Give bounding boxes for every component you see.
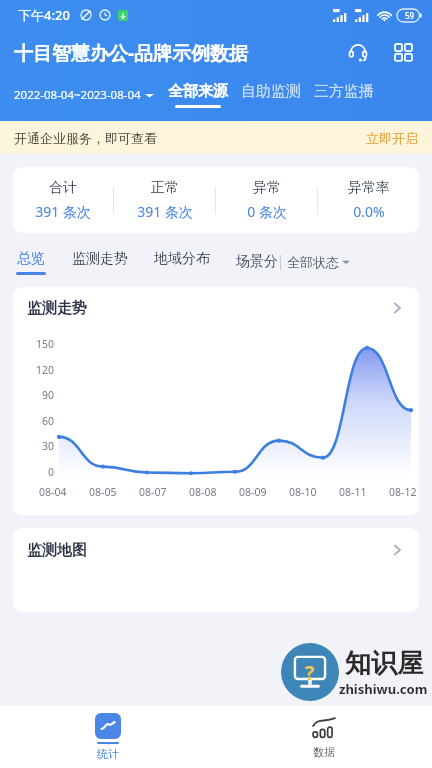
button[interactable]: 监测地图 bbox=[13, 528, 419, 572]
staticText: 08-09 bbox=[239, 485, 267, 499]
staticText: 总览 bbox=[17, 250, 45, 268]
button[interactable]: 合计 bbox=[13, 179, 113, 221]
staticText: 十目智慧办公-品牌示例数据 bbox=[14, 40, 249, 66]
staticText: 90 bbox=[42, 388, 55, 402]
staticText: 08-08 bbox=[189, 485, 217, 499]
staticText: 合计 bbox=[49, 179, 77, 197]
staticText: 监测走势 bbox=[72, 250, 128, 268]
staticText: 数据 bbox=[313, 745, 335, 759]
staticText: 08-10 bbox=[289, 485, 317, 499]
staticText: 立即开启 bbox=[366, 130, 418, 146]
button[interactable]: 统计 bbox=[0, 706, 216, 768]
button[interactable]: 监测走势 bbox=[13, 287, 419, 329]
staticText: 下午4:20 bbox=[18, 6, 70, 24]
button[interactable]: 总览 bbox=[16, 250, 46, 275]
button[interactable]: 异常 bbox=[216, 179, 317, 221]
staticText: 全部状态 bbox=[287, 254, 339, 270]
staticText: 异常率 bbox=[348, 179, 390, 197]
staticText: 391 条次 bbox=[137, 202, 193, 221]
staticText: 08-11 bbox=[339, 485, 367, 499]
button[interactable]: 全部状态 bbox=[287, 254, 350, 270]
staticText: 异常 bbox=[253, 179, 281, 197]
staticText: 120 bbox=[36, 363, 55, 377]
staticText: 150 bbox=[36, 337, 55, 351]
staticText: 0 条次 bbox=[247, 202, 287, 221]
button[interactable]: 正常 bbox=[114, 179, 215, 221]
button[interactable]: 异常率 bbox=[318, 179, 419, 221]
staticText: 30 bbox=[42, 439, 55, 453]
staticText: 监测走势 bbox=[27, 299, 87, 318]
staticText: 三方监播 bbox=[314, 82, 374, 101]
staticText: 08-12 bbox=[389, 485, 417, 499]
button[interactable]: 监测走势 bbox=[72, 250, 128, 275]
button[interactable]: 自助监测 bbox=[241, 82, 301, 108]
button[interactable]: 地域分布 bbox=[154, 250, 210, 275]
staticText: 0.0% bbox=[353, 202, 385, 221]
staticText: 地域分布 bbox=[154, 250, 210, 268]
staticText: 正常 bbox=[151, 179, 179, 197]
staticText: 知识屋 bbox=[345, 647, 423, 680]
staticText: 0 bbox=[48, 465, 55, 479]
button[interactable]: 全部来源 bbox=[168, 82, 228, 108]
button[interactable]: 2022-08-04~2023-08-04 bbox=[14, 87, 154, 103]
button[interactable]: 三方监播 bbox=[314, 82, 374, 108]
staticText: 统计 bbox=[97, 747, 119, 761]
staticText: 全部来源 bbox=[168, 82, 228, 101]
staticText: 监测地图 bbox=[27, 541, 87, 560]
other: 查看详情 bbox=[389, 300, 405, 316]
staticText: 59 bbox=[405, 10, 415, 21]
staticText: zhishiwu.com bbox=[339, 680, 428, 698]
staticText: 自助监测 bbox=[241, 82, 301, 101]
staticText: 08-04 bbox=[39, 485, 67, 499]
button[interactable]: 数据 bbox=[216, 706, 432, 768]
staticText: ? bbox=[305, 659, 315, 686]
button[interactable]: 应用菜单 bbox=[389, 38, 419, 68]
button[interactable]: 客服 bbox=[343, 38, 373, 68]
staticText: 60 bbox=[42, 414, 55, 428]
button[interactable]: 开通企业服务，即可查看 bbox=[0, 121, 432, 154]
staticText: 场景分布 bbox=[236, 253, 280, 271]
staticText: 08-07 bbox=[139, 485, 167, 499]
other: 查看监测地图 bbox=[389, 542, 405, 558]
staticText: 2022-08-04~2023-08-04 bbox=[14, 87, 141, 103]
staticText: 391 条次 bbox=[35, 202, 91, 221]
staticText: 08-05 bbox=[89, 485, 117, 499]
staticText: 开通企业服务，即可查看 bbox=[14, 130, 157, 146]
